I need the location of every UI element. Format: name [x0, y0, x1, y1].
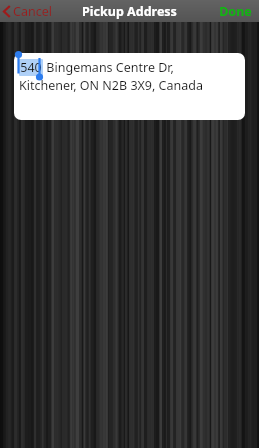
button[interactable]: Cancel — [0, 0, 58, 22]
button[interactable]: 540 — [14, 53, 245, 120]
staticText: Done — [219, 3, 252, 20]
staticText: 540 — [20, 59, 42, 76]
staticText: Bingemans Centre Dr, — [43, 59, 174, 76]
staticText: Pickup Address — [82, 3, 177, 20]
button[interactable]: Done — [212, 0, 259, 22]
staticText: Kitchener, ON N2B 3X9, Canada — [19, 77, 203, 94]
staticText: Cancel — [13, 3, 52, 20]
